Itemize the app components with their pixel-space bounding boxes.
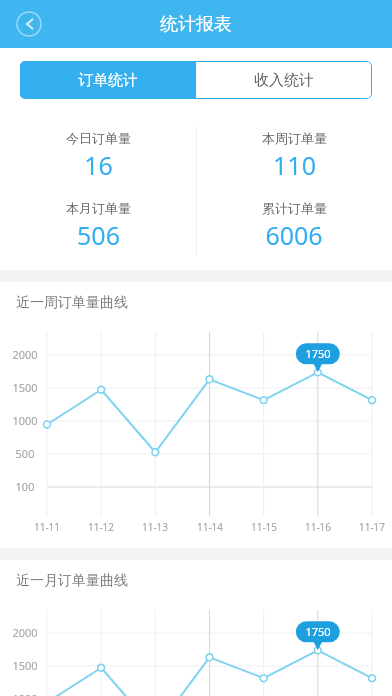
staticText: 500 <box>8 446 42 461</box>
staticText: 2000 <box>8 625 42 640</box>
staticText: 11-11 <box>23 520 71 534</box>
staticText: 11-15 <box>240 520 288 534</box>
staticText: 近一周订单量曲线 <box>16 294 128 312</box>
staticText: 506 <box>77 218 120 252</box>
button[interactable]: 本月订单量 <box>0 200 196 252</box>
staticText: 2000 <box>8 347 42 362</box>
button[interactable]: 收入统计 <box>196 61 372 99</box>
staticText: 1500 <box>8 380 42 395</box>
staticText: 100 <box>8 479 42 494</box>
staticText: 1000 <box>8 413 42 428</box>
button[interactable]: Back <box>12 7 46 41</box>
staticText: 1750 <box>296 624 340 639</box>
staticText: 11-16 <box>294 520 342 534</box>
staticText: 1500 <box>8 658 42 673</box>
button[interactable]: 累计订单量 <box>196 200 392 252</box>
staticText: 11-12 <box>77 520 125 534</box>
staticText: 6006 <box>265 218 323 252</box>
staticText: 16 <box>84 148 113 182</box>
staticText: 1750 <box>296 346 340 361</box>
button[interactable]: 本周订单量 <box>196 130 392 182</box>
staticText: 110 <box>273 148 316 182</box>
staticText: 本周订单量 <box>262 130 327 146</box>
staticText: 统计报表 <box>160 13 232 36</box>
button[interactable]: 今日订单量 <box>0 130 196 182</box>
staticText: 11-14 <box>186 520 234 534</box>
staticText: 11-13 <box>131 520 179 534</box>
staticText: 本月订单量 <box>66 200 131 216</box>
button[interactable]: 订单统计 <box>20 61 196 99</box>
staticText: 累计订单量 <box>262 200 327 216</box>
staticText: 订单统计 <box>78 71 138 90</box>
staticText: 近一月订单量曲线 <box>16 572 128 590</box>
staticText: 1000 <box>8 691 42 696</box>
staticText: 今日订单量 <box>66 130 131 146</box>
staticText: 11-17 <box>348 520 392 534</box>
staticText: 收入统计 <box>254 71 314 90</box>
